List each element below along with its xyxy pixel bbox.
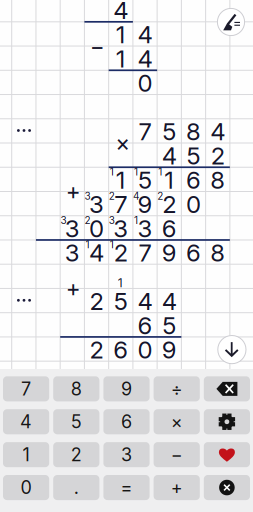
staticText: 1 [164,166,174,195]
staticText: 0 [137,69,152,98]
staticText: 1 [118,276,123,290]
button[interactable]: Favorites [204,442,250,467]
staticText: 0 [21,477,32,498]
staticText: 5 [114,287,128,316]
staticText: 6 [137,311,152,340]
staticText: 9 [137,190,152,219]
staticText: 3 [65,238,80,267]
staticText: 6 [186,238,201,267]
staticText: 4 [133,190,139,202]
button[interactable]: 1 [3,442,49,467]
staticText: × [115,129,130,157]
staticText: 1 [116,20,126,49]
staticText: 1 [134,214,138,226]
staticText: 5 [162,311,176,340]
staticText: 2 [85,214,91,226]
button[interactable]: 7 [3,376,49,401]
staticText: 9 [162,238,177,267]
staticText: 1 [116,44,126,73]
staticText: 1 [116,166,126,195]
button[interactable]: Close [204,475,250,500]
button[interactable]: 2 [53,442,99,467]
staticText: 6 [121,411,132,433]
button[interactable]: Decimal point [53,475,99,500]
staticText: 4 [89,238,104,267]
staticText: 9 [162,335,177,364]
button[interactable]: Delete [204,376,250,401]
staticText: 4 [137,287,152,316]
staticText: 7 [114,190,127,219]
staticText: 2 [211,141,225,170]
staticText: 4 [162,287,177,316]
staticText: 5 [186,141,200,170]
staticText: 8 [210,238,225,267]
staticText: 3 [121,444,132,466]
staticText: × [171,411,183,433]
staticText: 3 [113,214,128,243]
staticText: 5 [138,166,152,195]
staticText: + [171,477,183,498]
staticText: 4 [162,141,177,170]
button[interactable]: 8 [53,376,99,401]
staticText: 3 [137,214,152,243]
staticText: 0 [89,214,104,243]
staticText: 1 [134,166,138,178]
staticText: 1 [110,166,114,178]
staticText: 2 [162,190,176,219]
staticText: 6 [186,166,201,195]
staticText: 8 [210,166,225,195]
staticText: 4 [137,20,152,49]
button[interactable]: 0 [3,475,49,500]
button[interactable]: Minus [154,442,200,467]
staticText: + [66,178,81,205]
button[interactable]: 5 [53,409,99,434]
staticText: 3 [85,190,91,202]
staticText: 3 [60,214,66,226]
staticText: ÷ [171,378,183,400]
staticText: 3 [89,190,104,219]
staticText: 9 [121,378,132,400]
staticText: 0 [137,335,152,364]
staticText: 6 [162,214,177,243]
button[interactable]: 6 [103,409,150,434]
staticText: . [74,477,79,498]
staticText: 5 [71,411,82,433]
staticText: 1 [86,238,90,251]
button[interactable]: 3 [103,442,150,467]
staticText: 6 [113,335,128,364]
staticText: + [66,275,81,302]
staticText: 2 [89,335,103,364]
button[interactable]: 9 [103,376,150,401]
staticText: 1 [23,444,30,466]
button[interactable]: 4 [3,409,49,434]
button[interactable]: Scroll to bottom [218,335,246,364]
staticText: 2 [71,444,82,466]
staticText: 8 [186,117,201,146]
staticText: 4 [210,117,225,146]
staticText: 2 [114,238,128,267]
staticText: 3 [65,214,80,243]
button[interactable]: Multiply [154,409,200,434]
button[interactable]: Divide [154,376,200,401]
staticText: 0 [186,190,201,219]
staticText: 7 [138,238,151,267]
staticText: 7 [21,378,31,400]
button[interactable]: Plus [154,475,200,500]
button[interactable]: More options [11,119,37,141]
staticText: 4 [113,0,128,25]
button[interactable]: More options [11,289,37,311]
staticText: 2 [157,190,163,202]
button[interactable]: Equals [103,475,150,500]
staticText: 5 [162,117,176,146]
staticText: 8 [71,378,82,400]
staticText: = [120,477,132,498]
button[interactable]: Settings [204,409,250,434]
staticText: 4 [20,411,32,433]
staticText: 2 [89,287,103,316]
staticText: 4 [137,44,152,73]
button[interactable]: Clear [217,8,245,36]
staticText: − [90,32,105,60]
staticText: 1 [110,238,114,251]
staticText: 2 [109,190,115,202]
staticText: 7 [138,117,151,146]
